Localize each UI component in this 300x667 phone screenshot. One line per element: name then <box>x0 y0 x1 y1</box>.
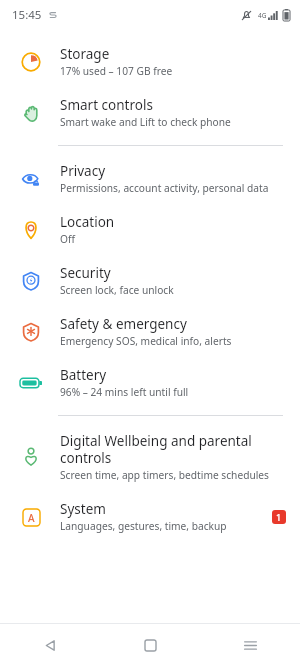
staticText: Emergency SOS, medical info, alerts <box>60 334 232 348</box>
button[interactable]: Security <box>0 255 300 306</box>
staticText: 17% used – 107 GB free <box>60 64 173 78</box>
staticText: Battery <box>60 366 107 384</box>
staticText: System <box>60 500 106 518</box>
button[interactable]: Smart controls <box>0 87 300 138</box>
button[interactable]: Battery <box>0 357 300 408</box>
button[interactable]: A <box>0 491 300 542</box>
staticText: Storage <box>60 45 110 63</box>
button[interactable]: Recent apps <box>200 624 300 667</box>
staticText: Smart wake and Lift to check phone <box>60 115 231 129</box>
staticText: 4G <box>258 11 267 20</box>
button[interactable]: Location <box>0 204 300 255</box>
staticText: Safety & emergency <box>60 315 187 333</box>
staticText: Screen time, app timers, bedtime schedul… <box>60 468 269 482</box>
staticText: Languages, gestures, time, backup <box>60 519 227 533</box>
staticText: Smart controls <box>60 96 153 114</box>
staticText: A <box>28 511 35 525</box>
staticText: Screen lock, face unlock <box>60 283 174 297</box>
staticText: Permissions, account activity, personal … <box>60 181 269 195</box>
button[interactable]: Privacy <box>0 153 300 204</box>
staticText: Digital Wellbeing and parental controls <box>60 432 286 467</box>
button[interactable]: Safety & emergency <box>0 306 300 357</box>
staticText: 1 <box>276 511 282 523</box>
staticText: Security <box>60 264 111 282</box>
button[interactable]: Back <box>0 624 100 667</box>
staticText: 96% – 24 mins left until full <box>60 385 189 399</box>
staticText: 15:45 <box>12 7 42 23</box>
button[interactable]: Home <box>100 624 200 667</box>
staticText: Location <box>60 213 115 231</box>
staticText: Off <box>60 232 75 246</box>
button[interactable]: Storage <box>0 36 300 87</box>
staticText: Privacy <box>60 162 106 180</box>
button[interactable]: Digital Wellbeing and parental controls <box>0 423 300 491</box>
